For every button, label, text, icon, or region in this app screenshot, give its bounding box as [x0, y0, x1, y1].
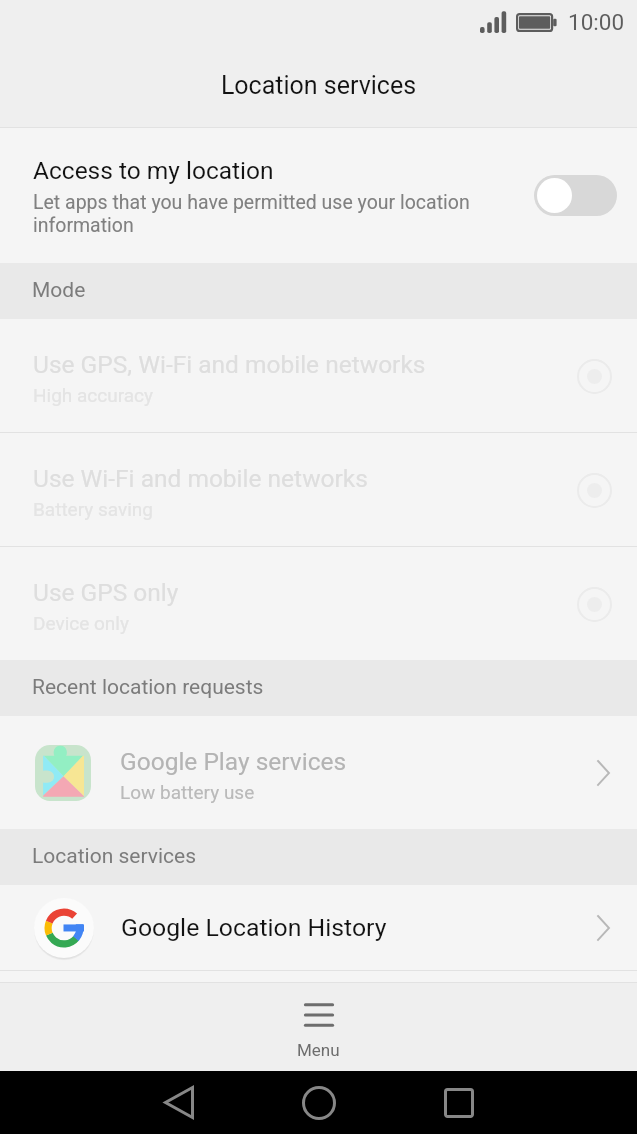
staticText: Recent location requests [32, 675, 264, 700]
staticText: Mode [32, 278, 86, 303]
button[interactable]: Back [109, 1071, 249, 1134]
staticText: Google Location History [121, 913, 597, 942]
staticText: Access to my location [33, 156, 274, 185]
button[interactable]: Use GPS, Wi-Fi and mobile networks [0, 319, 637, 432]
staticText: Low battery use [120, 781, 255, 803]
staticText: Location services [32, 844, 196, 869]
button[interactable]: Use Wi-Fi and mobile networks [0, 433, 637, 546]
button[interactable]: Google Location History [0, 885, 637, 970]
button[interactable]: Access to my location toggle [534, 175, 617, 216]
staticText: Menu [297, 1040, 340, 1060]
staticText: Device only [33, 612, 129, 634]
staticText: Let apps that you have permitted use you… [33, 191, 479, 237]
staticText: Google Play services [120, 747, 347, 776]
staticText: Use Wi-Fi and mobile networks [33, 464, 368, 493]
staticText: Use GPS only [33, 578, 179, 607]
staticText: 10:00 [568, 9, 625, 35]
staticText: Use GPS, Wi-Fi and mobile networks [33, 350, 426, 379]
staticText: High accuracy [33, 384, 154, 406]
staticText: Location services [0, 71, 637, 100]
staticText: Battery saving [33, 498, 153, 520]
button[interactable]: Google Play services [0, 716, 637, 829]
button[interactable]: Recent apps [389, 1071, 529, 1134]
button[interactable]: Menu [257, 983, 380, 1060]
button[interactable]: Access to my location [0, 128, 637, 263]
button[interactable]: Home [249, 1071, 389, 1134]
